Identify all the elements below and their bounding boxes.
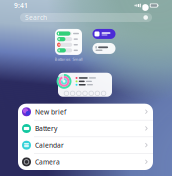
staticText: New brief bbox=[35, 107, 66, 116]
staticText: Battery bbox=[35, 124, 57, 133]
staticText: Camera bbox=[35, 157, 60, 166]
button[interactable]: Camera bbox=[18, 154, 153, 170]
staticText: Calendar bbox=[35, 141, 64, 150]
button[interactable]: New brief bbox=[18, 104, 153, 120]
button[interactable]: Calendar bbox=[18, 137, 153, 153]
button[interactable]: Battery bbox=[18, 120, 153, 137]
staticText: 9:41 bbox=[14, 1, 28, 10]
button[interactable]: Search bbox=[20, 13, 152, 22]
staticText: Search bbox=[25, 13, 47, 22]
staticText: Batteries Small bbox=[54, 56, 82, 62]
